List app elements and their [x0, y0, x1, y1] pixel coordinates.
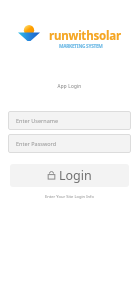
button[interactable]: Enter Password: [8, 134, 131, 153]
staticText: Enter Password: [16, 140, 57, 147]
staticText: Enter Your Site Login Info: [0, 194, 139, 200]
staticText: Enter Username: [16, 117, 59, 124]
button[interactable]: Lock: [10, 164, 129, 187]
staticText: Login: [59, 167, 92, 184]
button[interactable]: Enter Username: [8, 111, 131, 130]
staticText: runwithsolar: [49, 28, 121, 44]
staticText: MARKETING SYSTEM: [59, 43, 103, 50]
staticText: App Login: [0, 83, 139, 89]
other: Lock: [47, 171, 56, 180]
